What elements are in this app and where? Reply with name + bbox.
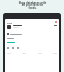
staticText: Shop databases with all your favorite fo… — [18, 1, 47, 10]
staticText: Cart — [7, 21, 13, 24]
